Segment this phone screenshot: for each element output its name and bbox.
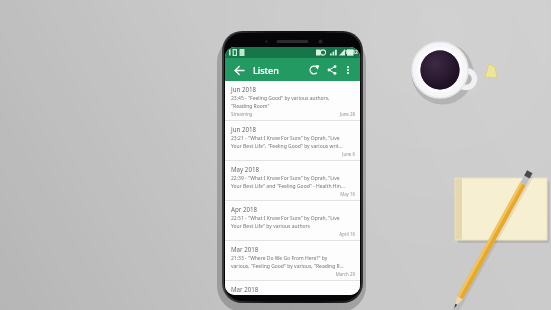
staticText: 23:45 - "Feeling Good" by various author… [231,95,330,102]
staticText: Apr 2018 [231,205,258,213]
staticText: Mar 2018 [231,245,259,253]
staticText: Your Best Life" and "Feeling Good" - Hea… [231,183,345,190]
staticText: 23:21 - "What I Know For Sure" by Oprah,… [231,135,340,142]
staticText: June 28 [339,111,355,117]
staticText: Your Best Life", "Feeling Good" by vario… [231,143,343,150]
button[interactable]: Mar 2018 [225,241,360,280]
staticText: various, "Feeling Good" by various, "Rea… [231,263,344,270]
button[interactable]: Jun 2018 [225,121,360,160]
staticText: 22:51 - "What I Know For Sure" by Oprah,… [231,215,340,222]
staticText: 22:39 - "What I Know For Sure" by Oprah,… [231,175,340,182]
button[interactable]: Share [323,61,341,79]
button[interactable]: Mar 2018 [225,281,360,295]
staticText: Listen [253,64,279,76]
button[interactable]: Back [230,61,248,79]
staticText: 13:32 [345,49,358,56]
staticText: Your Best Life" by various authors [231,223,310,230]
staticText: Jun 2018 [231,125,257,133]
staticText: 21:33 - "Where Do We Go From Here?" by [231,255,328,262]
button[interactable]: More options [341,63,355,77]
staticText: June 6 [342,151,355,157]
staticText: "Reading Room" [231,103,270,110]
staticText: May 16 [340,191,355,197]
staticText: Mar 2018 [231,285,259,292]
staticText: May 2018 [231,165,260,173]
button[interactable]: Jun 2018 [225,81,360,120]
button[interactable]: Apr 2018 [225,201,360,240]
staticText: April 16 [339,231,355,237]
staticText: Jun 2018 [231,85,257,93]
button[interactable]: May 2018 [225,161,360,200]
staticText: March 29 [335,271,355,277]
staticText: Streaming [231,111,253,117]
button[interactable]: Refresh [305,61,323,79]
